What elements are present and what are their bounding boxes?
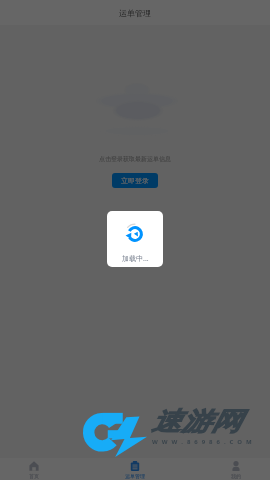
staticText: W W W . 8 6 9 8 6 . C O M (152, 438, 253, 446)
button[interactable]: 运单管理 (109, 458, 161, 480)
button[interactable]: 我的 (210, 458, 262, 480)
staticText: 点击登录获取最新运单信息 (99, 155, 171, 163)
staticText: 立即登录 (121, 176, 149, 185)
staticText: 速游网 (151, 406, 241, 438)
staticText: 运单管理 (119, 8, 151, 18)
staticText: 首页 (29, 473, 39, 479)
button[interactable]: 首页 (8, 458, 60, 480)
staticText: 我的 (231, 473, 241, 479)
button[interactable]: 立即登录 (112, 173, 158, 188)
staticText: 运单管理 (125, 473, 145, 479)
staticText: 加载中... (122, 254, 149, 264)
